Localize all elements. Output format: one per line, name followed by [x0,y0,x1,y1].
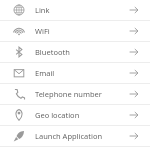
other: Open WiFi [124,21,144,41]
other: Open Launch Application [124,126,144,146]
button[interactable]: WiFi [0,21,150,41]
staticText: Bluetooth [35,47,124,57]
other: Open Bluetooth [124,42,144,62]
other: Open Telephone number [124,84,144,104]
button[interactable]: Link [0,0,150,20]
other: Open Link [124,0,144,20]
button[interactable]: Bluetooth [0,42,150,62]
staticText: Launch Application [35,131,124,141]
button[interactable]: Email [0,63,150,83]
other: Open Geo location [124,105,144,125]
other: Open Email [124,63,144,83]
staticText: Email [35,68,124,78]
button[interactable]: Telephone number [0,84,150,104]
staticText: Telephone number [35,89,124,99]
button[interactable]: Geo location [0,105,150,125]
staticText: WiFi [35,26,124,36]
button[interactable]: Launch Application [0,126,150,146]
staticText: Link [35,5,124,15]
staticText: Geo location [35,110,124,120]
